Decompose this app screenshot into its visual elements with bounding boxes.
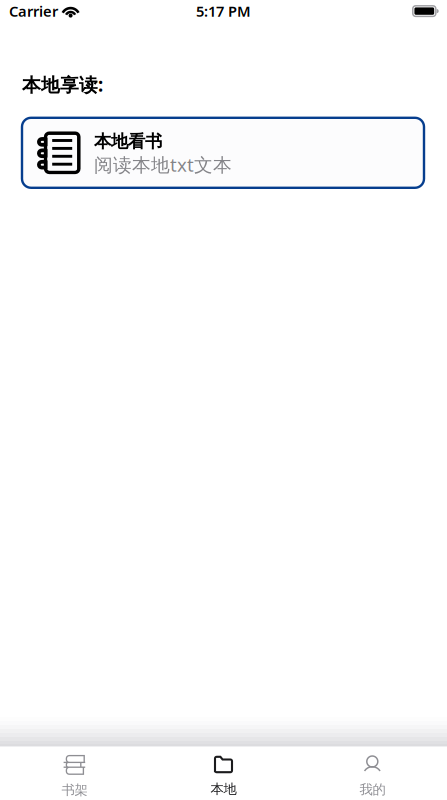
staticText: 本地享读: bbox=[22, 72, 103, 97]
staticText: 阅读本地txt文本 bbox=[94, 152, 232, 177]
staticText: 本地看书 bbox=[94, 131, 162, 152]
staticText: 本地 bbox=[210, 781, 236, 797]
button[interactable]: 本地看书 bbox=[22, 118, 424, 188]
staticText: 5:17 PM bbox=[196, 1, 251, 21]
button[interactable]: 我的 bbox=[298, 746, 447, 800]
staticText: Carrier bbox=[9, 1, 58, 21]
button[interactable]: 本地 bbox=[149, 747, 298, 800]
staticText: 我的 bbox=[359, 781, 385, 798]
button[interactable]: 书架 bbox=[0, 746, 149, 800]
staticText: 书架 bbox=[61, 782, 87, 798]
